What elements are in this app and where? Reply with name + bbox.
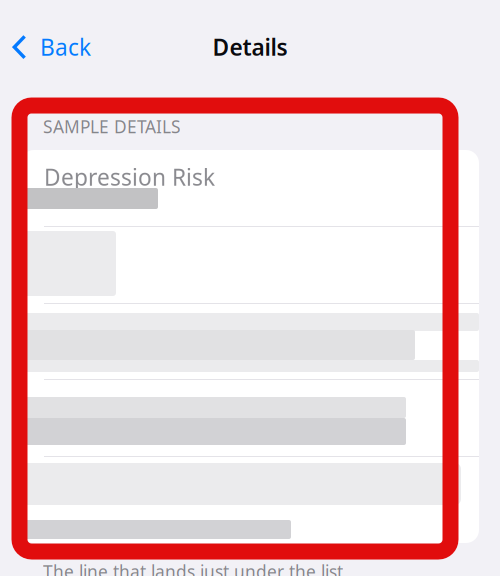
staticText: Depression Risk bbox=[44, 162, 215, 192]
button[interactable] bbox=[21, 150, 479, 543]
button[interactable]: Back bbox=[0, 19, 103, 75]
staticText: SAMPLE DETAILS bbox=[43, 115, 181, 138]
staticText: Details bbox=[212, 32, 287, 62]
button[interactable] bbox=[21, 150, 479, 543]
staticText: Back bbox=[40, 32, 91, 62]
button[interactable] bbox=[21, 150, 479, 543]
button[interactable] bbox=[21, 150, 479, 543]
button[interactable]: Depression Risk bbox=[21, 150, 479, 226]
staticText: The line that lands just under the list bbox=[43, 560, 343, 576]
